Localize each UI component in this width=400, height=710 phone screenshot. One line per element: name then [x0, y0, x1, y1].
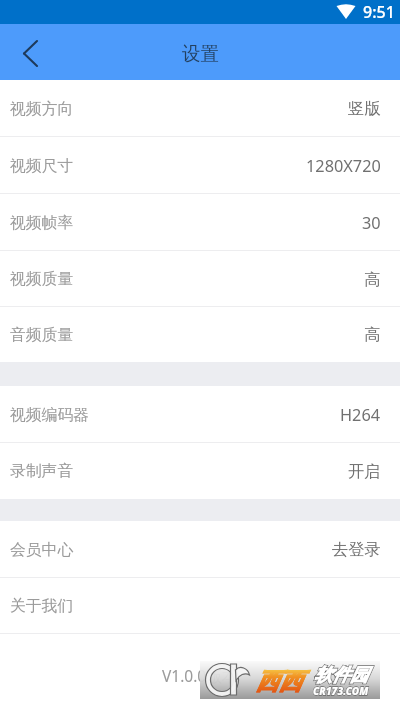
staticText: CR173.COM	[313, 684, 369, 698]
staticText: 设置	[182, 42, 219, 65]
staticText: 高	[364, 269, 381, 290]
staticText: 视频编码器	[10, 405, 89, 425]
button[interactable]: 录制声音	[0, 443, 400, 499]
button[interactable]: 关于我们	[0, 578, 400, 634]
staticText: 开启	[348, 461, 381, 482]
button[interactable]: 视频质量	[0, 251, 400, 307]
staticText: 30	[362, 212, 381, 234]
staticText: 音频质量	[10, 325, 74, 345]
button[interactable]: 音频质量	[0, 307, 400, 362]
staticText: 视频方向	[10, 99, 74, 119]
staticText: 竖版	[348, 98, 381, 119]
staticText: 去登录	[332, 539, 381, 560]
staticText: 视频帧率	[10, 213, 74, 233]
staticText: V1.0.0版本	[162, 665, 238, 686]
staticText: 9:51	[363, 1, 395, 23]
staticText: 西西	[256, 667, 302, 696]
staticText: CR173.COM	[313, 684, 369, 698]
staticText: 软件园	[314, 664, 368, 687]
staticText: 录制声音	[10, 461, 74, 481]
button[interactable]: 视频方向	[0, 80, 400, 137]
staticText: 软件园	[314, 664, 368, 687]
staticText: 西西	[256, 667, 302, 696]
staticText: 视频尺寸	[10, 156, 74, 176]
staticText: H264	[340, 404, 381, 426]
staticText: 高	[364, 324, 381, 345]
button[interactable]: 视频尺寸	[0, 137, 400, 194]
staticText: 视频质量	[10, 269, 74, 289]
button[interactable]: 视频编码器	[0, 386, 400, 443]
staticText: 关于我们	[10, 596, 74, 616]
button[interactable]: 视频帧率	[0, 194, 400, 251]
button[interactable]: 会员中心	[0, 521, 400, 578]
staticText: 1280X720	[306, 155, 381, 177]
staticText: 会员中心	[10, 540, 74, 560]
button[interactable]: Back	[0, 24, 56, 80]
